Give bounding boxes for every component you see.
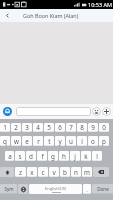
button[interactable]: . — [83, 184, 91, 194]
button[interactable]: Change keyboard language — [18, 184, 28, 194]
staticText: 3 — [25, 123, 29, 132]
staticText: x — [30, 168, 34, 177]
button[interactable]: Add attachment — [3, 107, 12, 116]
button[interactable]: 2 — [11, 123, 21, 132]
button[interactable]: l — [92, 151, 102, 161]
button[interactable]: v — [49, 167, 59, 177]
staticText: o — [91, 137, 95, 146]
staticText: k — [84, 152, 88, 161]
button[interactable]: Done — [92, 184, 113, 194]
staticText: 4 — [36, 123, 40, 132]
button[interactable]: o — [88, 136, 98, 146]
staticText: Done — [97, 186, 109, 192]
staticText: i — [81, 137, 83, 146]
button[interactable]: Space — [29, 184, 82, 194]
button[interactable]: 8 — [77, 123, 87, 132]
staticText: r — [37, 137, 40, 146]
staticText: Sym — [4, 186, 14, 192]
button[interactable]: c — [38, 167, 48, 177]
button[interactable]: Back — [0, 9, 15, 22]
button[interactable]: e — [22, 136, 32, 146]
staticText: d — [29, 152, 33, 161]
button[interactable]: d — [26, 151, 36, 161]
button[interactable]: b — [60, 167, 70, 177]
button[interactable]: 7 — [66, 123, 76, 132]
button[interactable]: i — [77, 136, 87, 146]
button[interactable]: j — [70, 151, 80, 161]
button[interactable]: n — [71, 167, 81, 177]
staticText: s — [18, 152, 22, 161]
button[interactable]: 9 — [88, 123, 98, 132]
staticText: 0 — [102, 123, 106, 132]
staticText: m — [84, 168, 90, 177]
staticText: u — [69, 137, 73, 146]
staticText: Goh Boon Kiam (Alan) — [23, 12, 79, 19]
staticText: n — [74, 168, 78, 177]
button[interactable]: u — [66, 136, 76, 146]
button[interactable]: m — [82, 167, 92, 177]
staticText: 1 — [3, 123, 7, 132]
staticText: c — [41, 168, 45, 177]
button[interactable]: w — [11, 136, 21, 146]
staticText: 6 — [58, 123, 62, 132]
staticText: z — [19, 168, 22, 177]
staticText: l — [96, 152, 98, 161]
button[interactable]: 3 — [22, 123, 32, 132]
button[interactable]: Backspace — [93, 167, 109, 177]
staticText: 8 — [80, 123, 84, 132]
staticText: English(US) — [45, 186, 67, 191]
staticText: 2 — [14, 123, 18, 132]
staticText: 9 — [91, 123, 95, 132]
button[interactable]: x — [27, 167, 37, 177]
staticText: f — [41, 152, 44, 161]
button[interactable]: p — [99, 136, 109, 146]
staticText: p — [102, 137, 106, 146]
staticText: v — [52, 168, 56, 177]
staticText: a — [8, 152, 12, 161]
staticText: e — [25, 137, 29, 146]
button[interactable]: g — [48, 151, 58, 161]
button[interactable]: r — [33, 136, 43, 146]
button[interactable]: 0 — [99, 123, 109, 132]
staticText: 5 — [47, 123, 51, 132]
button[interactable]: 6 — [55, 123, 65, 132]
button[interactable]: a — [5, 151, 14, 161]
button[interactable]: q — [0, 136, 10, 146]
button[interactable]: k — [81, 151, 91, 161]
button[interactable]: Emoji — [92, 107, 101, 116]
staticText: 7 — [69, 123, 73, 132]
staticText: q — [3, 137, 7, 146]
button[interactable]: Sym — [0, 184, 17, 194]
button[interactable]: Shift — [0, 167, 14, 177]
staticText: . — [86, 186, 88, 193]
staticText: g — [51, 152, 55, 161]
staticText: y — [58, 137, 62, 146]
button[interactable]: Add — [102, 107, 111, 116]
button[interactable]: s — [15, 151, 25, 161]
button[interactable]: 5 — [44, 123, 54, 132]
staticText: h — [62, 152, 66, 161]
staticText: w — [14, 137, 19, 146]
staticText: 10:53 AM — [88, 1, 112, 8]
staticText: b — [63, 168, 67, 177]
button[interactable]: t — [44, 136, 54, 146]
staticText: t — [48, 137, 51, 146]
button[interactable]: z — [15, 167, 26, 177]
button[interactable]: 1 — [0, 123, 10, 132]
button[interactable]: 4 — [33, 123, 43, 132]
button[interactable]: y — [55, 136, 65, 146]
button[interactable]: h — [59, 151, 69, 161]
button[interactable]: f — [37, 151, 47, 161]
button[interactable]: Message input — [16, 107, 91, 116]
staticText: j — [74, 152, 76, 161]
